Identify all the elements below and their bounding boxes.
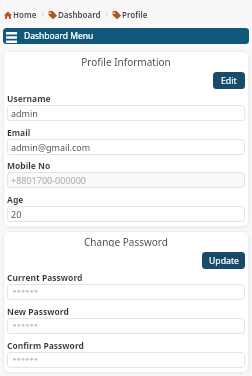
button[interactable]: Confirm Password	[7, 352, 245, 368]
staticText: +8801700-000000	[11, 174, 86, 186]
staticText: Profile Information	[81, 55, 171, 67]
staticText: Email	[7, 127, 31, 138]
staticText: Profile	[122, 9, 148, 20]
button[interactable]: +8801700-000000	[7, 172, 245, 188]
staticText: Confirm Password	[7, 340, 84, 351]
other: Open navigation menu	[6, 31, 17, 42]
staticText: admin	[11, 107, 38, 119]
button[interactable]: Update	[202, 252, 245, 269]
staticText: Update	[209, 255, 239, 267]
staticText: Edit	[221, 75, 237, 87]
button[interactable]: New Password	[7, 318, 245, 334]
staticText: Username	[7, 93, 51, 104]
staticText: Home	[13, 9, 37, 20]
button[interactable]: admin	[7, 105, 245, 121]
button[interactable]: admin@gmail.com	[7, 139, 245, 155]
staticText: Age	[7, 194, 24, 205]
staticText: 20	[11, 208, 22, 220]
staticText: admin@gmail.com	[11, 141, 91, 153]
button[interactable]: Edit	[213, 72, 245, 89]
button[interactable]: Current Password	[7, 284, 245, 300]
button[interactable]: Home	[4, 9, 37, 20]
button[interactable]: Open navigation menu	[3, 28, 249, 44]
button[interactable]: Profile	[112, 9, 148, 20]
staticText: Current Password	[7, 272, 83, 283]
staticText: Change Password	[84, 235, 168, 247]
staticText: Mobile No	[7, 160, 51, 171]
button[interactable]: 20	[7, 206, 245, 222]
button[interactable]: Dashboard	[48, 9, 101, 20]
staticText: Dashboard	[58, 9, 101, 20]
staticText: New Password	[7, 306, 69, 317]
staticText: Dashboard Menu	[24, 30, 94, 42]
